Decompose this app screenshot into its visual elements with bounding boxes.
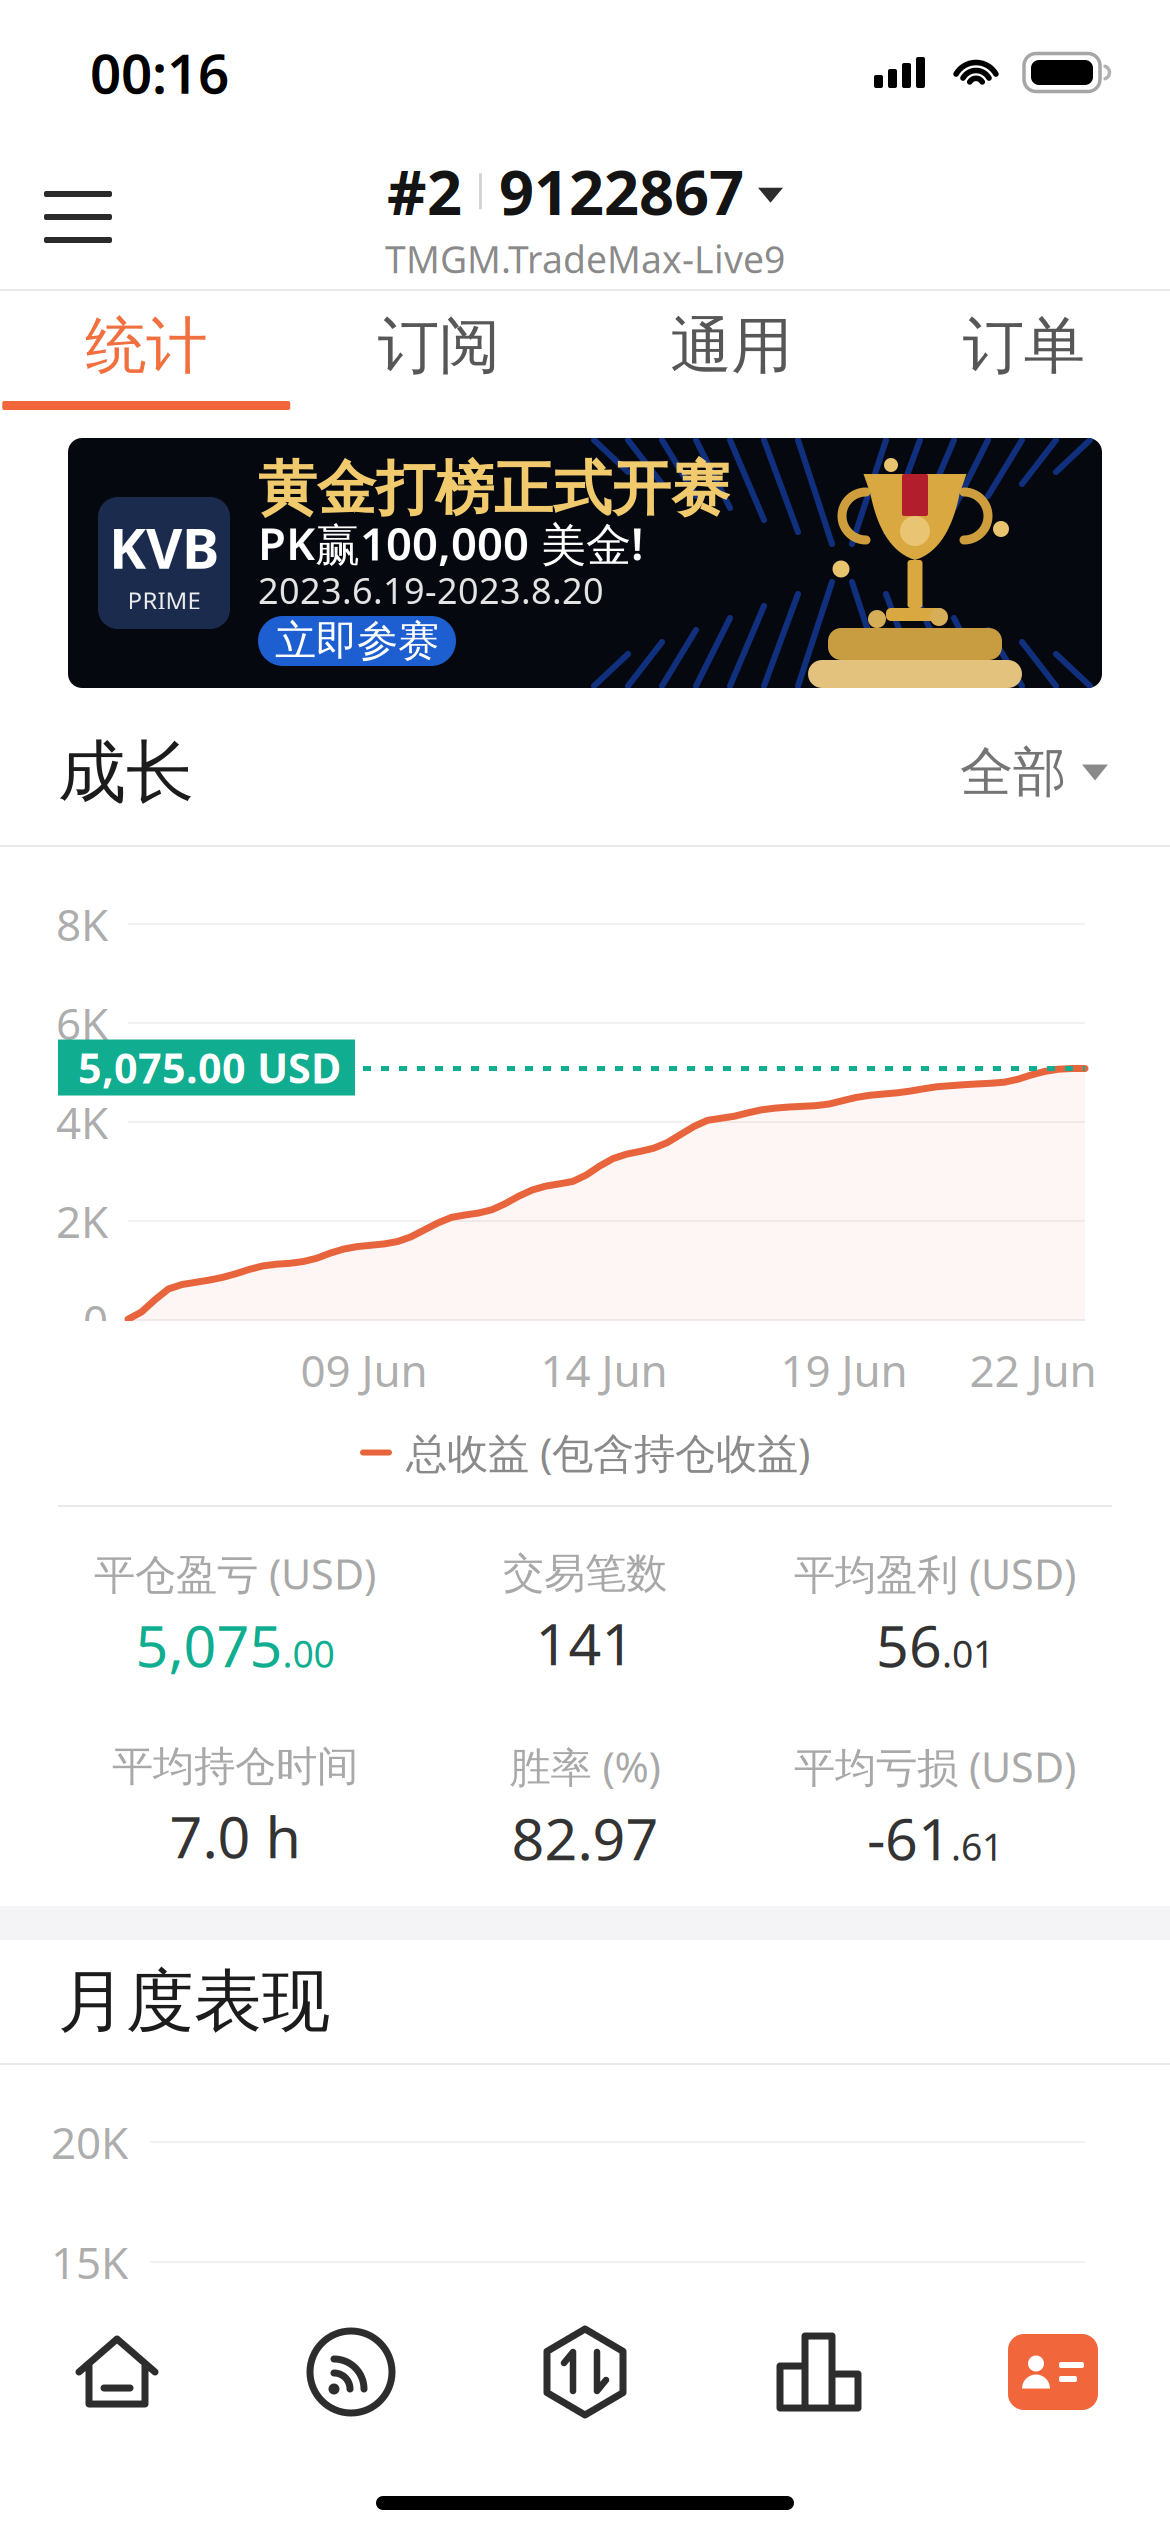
staticText: 总收益 (包含持仓收益) bbox=[406, 1425, 810, 1480]
button[interactable]: 统计 bbox=[0, 291, 292, 410]
staticText: 82.97 bbox=[511, 1800, 658, 1876]
staticText: 7.0 h bbox=[169, 1798, 300, 1874]
button[interactable]: Home bbox=[0, 2302, 234, 2442]
staticText: 20K bbox=[51, 2113, 128, 2171]
button[interactable]: Profile bbox=[936, 2302, 1170, 2442]
staticText: .01 bbox=[942, 1628, 994, 1678]
staticText: 订阅 bbox=[378, 308, 500, 384]
staticText: 9122867 bbox=[499, 150, 744, 232]
staticText: 立即参赛 bbox=[275, 616, 439, 666]
staticText: PRIME bbox=[127, 584, 200, 616]
staticText: .00 bbox=[282, 1628, 334, 1678]
button[interactable]: 订阅 bbox=[292, 291, 585, 410]
staticText: 8K bbox=[56, 895, 108, 953]
staticText: 平均盈利 (USD) bbox=[794, 1546, 1076, 1601]
button[interactable]: 通用 bbox=[585, 291, 877, 410]
staticText: -61 bbox=[867, 1800, 951, 1876]
staticText: .61 bbox=[951, 1821, 1003, 1871]
staticText: 6K bbox=[56, 994, 108, 1052]
staticText: 平仓盈亏 (USD) bbox=[94, 1546, 376, 1601]
staticText: 月度表现 bbox=[58, 1960, 330, 2043]
staticText: 通用 bbox=[670, 308, 792, 384]
staticText: 平均持仓时间 bbox=[112, 1741, 358, 1792]
button[interactable]: Signals bbox=[234, 2302, 468, 2442]
staticText: 2023.6.19-2023.8.20 bbox=[258, 566, 604, 614]
button[interactable]: KVB bbox=[0, 438, 1170, 688]
staticText: 56 bbox=[876, 1607, 942, 1683]
staticText: TMGM.TradeMax-Live9 bbox=[385, 234, 785, 283]
staticText: 00:16 bbox=[90, 36, 229, 109]
staticText: 15K bbox=[51, 2233, 128, 2291]
staticText: 22 Jun bbox=[969, 1341, 1096, 1399]
staticText: #2 bbox=[387, 150, 462, 232]
staticText: PK赢100,000 美金! bbox=[258, 513, 644, 573]
button[interactable]: Trade bbox=[468, 2302, 702, 2442]
button[interactable]: Menu bbox=[18, 157, 138, 277]
staticText: 19 Jun bbox=[780, 1341, 907, 1399]
staticText: 141 bbox=[535, 1605, 634, 1681]
staticText: 14 Jun bbox=[540, 1341, 667, 1399]
staticText: 成长 bbox=[58, 731, 194, 814]
staticText: 交易笔数 bbox=[503, 1548, 667, 1599]
staticText: 统计 bbox=[85, 308, 207, 384]
staticText: 0 bbox=[83, 1291, 108, 1349]
staticText: 4K bbox=[56, 1093, 108, 1151]
staticText: 5,075 bbox=[135, 1607, 282, 1683]
button[interactable]: 订单 bbox=[877, 291, 1170, 410]
staticText: 09 Jun bbox=[300, 1341, 427, 1399]
staticText: 胜率 (%) bbox=[509, 1739, 660, 1794]
staticText: 5,075.00 USD bbox=[78, 1040, 341, 1095]
staticText: 黄金打榜正式开赛 bbox=[258, 453, 730, 525]
button[interactable]: 全部 bbox=[960, 717, 1108, 827]
staticText: 2K bbox=[56, 1192, 108, 1250]
staticText: 订单 bbox=[963, 308, 1085, 384]
staticText: KVB bbox=[109, 510, 219, 584]
staticText: 平均亏损 (USD) bbox=[794, 1739, 1076, 1794]
staticText: 全部 bbox=[960, 740, 1066, 805]
button[interactable]: Statistics bbox=[702, 2302, 936, 2442]
